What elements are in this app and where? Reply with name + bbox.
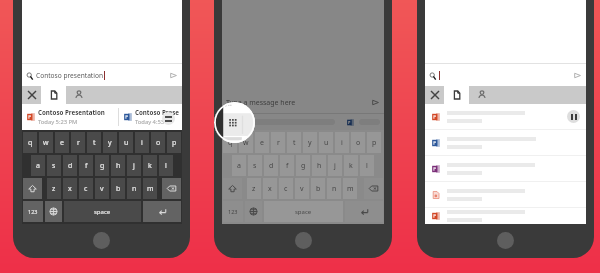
button[interactable]	[432, 182, 582, 207]
button[interactable]: z	[247, 178, 261, 199]
button[interactable]: q	[23, 132, 37, 153]
button[interactable]: s	[248, 155, 262, 176]
button[interactable]: l	[360, 155, 374, 176]
button[interactable]: y	[103, 132, 117, 153]
button[interactable]: Change language	[245, 201, 262, 222]
button[interactable]: i	[135, 132, 149, 153]
button[interactable]: People tab	[469, 86, 495, 104]
button[interactable]	[425, 64, 586, 86]
button[interactable]: u	[119, 132, 133, 153]
button[interactable]: m	[143, 178, 157, 199]
button[interactable]: w	[239, 132, 253, 153]
button[interactable]: Home	[93, 232, 110, 249]
button[interactable]: w	[39, 132, 53, 153]
button[interactable]: i	[335, 132, 349, 153]
button[interactable]: h	[312, 155, 326, 176]
staticText: 123	[28, 208, 38, 215]
staticText: Today 4:53	[135, 118, 165, 126]
staticText: v	[100, 184, 104, 194]
staticText: d	[68, 161, 73, 171]
button[interactable]: l	[159, 155, 173, 176]
button[interactable]: f	[280, 155, 294, 176]
button[interactable]	[432, 104, 582, 129]
button[interactable]: r	[271, 132, 285, 153]
button[interactable]: j	[127, 155, 141, 176]
button[interactable]: 123	[223, 201, 243, 222]
button[interactable]: space	[64, 201, 141, 222]
button[interactable]: n	[327, 178, 341, 199]
button[interactable]	[432, 130, 582, 155]
button[interactable]: c	[79, 178, 93, 199]
button[interactable]: 123	[23, 201, 43, 222]
button[interactable]: o	[151, 132, 165, 153]
button[interactable]: t	[287, 132, 301, 153]
staticText: j	[133, 161, 135, 171]
button[interactable]: m	[343, 178, 357, 199]
button[interactable]: Shift	[223, 178, 242, 199]
button[interactable]: f	[79, 155, 93, 176]
button[interactable]: c	[279, 178, 293, 199]
button[interactable]: e	[55, 132, 69, 153]
button[interactable]: Backspace	[364, 178, 383, 199]
staticText: z	[52, 184, 56, 194]
button[interactable]: Contoso Presentation	[27, 104, 116, 130]
button[interactable]: Home	[295, 232, 312, 249]
button[interactable]: Contoso Prese	[124, 104, 180, 130]
button[interactable]: o	[351, 132, 365, 153]
staticText: b	[116, 184, 121, 194]
button[interactable]: t	[87, 132, 101, 153]
button[interactable]: Enter	[345, 201, 383, 222]
button[interactable]: Close	[425, 86, 444, 104]
button[interactable]: Apps	[214, 102, 255, 143]
button[interactable]: v	[95, 178, 109, 199]
button[interactable]: h	[111, 155, 125, 176]
button[interactable]: More options	[162, 112, 175, 125]
button[interactable]: a	[232, 155, 246, 176]
button[interactable]: space	[264, 201, 343, 222]
button[interactable]: e	[255, 132, 269, 153]
button[interactable]	[432, 208, 582, 224]
button[interactable]: p	[167, 132, 181, 153]
button[interactable]: b	[311, 178, 325, 199]
button[interactable]: n	[127, 178, 141, 199]
button[interactable]: k	[344, 155, 358, 176]
button[interactable]: d	[264, 155, 278, 176]
button[interactable]	[432, 156, 582, 181]
button[interactable]: b	[111, 178, 125, 199]
button[interactable]: Pause	[567, 110, 580, 123]
button[interactable]: g	[95, 155, 109, 176]
button[interactable]: x	[63, 178, 77, 199]
button[interactable]: v	[295, 178, 309, 199]
staticText: x	[68, 184, 72, 194]
button[interactable]: Files tab	[41, 86, 66, 104]
button[interactable]: a	[31, 155, 45, 176]
button[interactable]: r	[71, 132, 85, 153]
button[interactable]: g	[296, 155, 310, 176]
button[interactable]: s	[47, 155, 61, 176]
button[interactable]: Enter	[143, 201, 181, 222]
staticText: q	[28, 138, 33, 148]
button[interactable]: Backspace	[162, 178, 181, 199]
button[interactable]: People tab	[66, 86, 92, 104]
button[interactable]: y	[303, 132, 317, 153]
button[interactable]: q	[223, 132, 237, 153]
button[interactable]: Change language	[45, 201, 62, 222]
button[interactable]: Home	[497, 232, 514, 249]
button[interactable]: d	[63, 155, 77, 176]
staticText: t	[293, 138, 296, 148]
staticText: n	[332, 184, 337, 194]
button[interactable]: p	[367, 132, 381, 153]
button[interactable]: z	[47, 178, 61, 199]
button[interactable]: k	[143, 155, 157, 176]
button[interactable]: Files tab	[444, 86, 469, 104]
button[interactable]: Shift	[23, 178, 42, 199]
button[interactable]: u	[319, 132, 333, 153]
staticText: space	[94, 208, 111, 216]
button[interactable]: Close	[22, 86, 41, 104]
button[interactable]: j	[328, 155, 342, 176]
staticText: h	[317, 161, 322, 171]
button[interactable]: Contoso presentation	[22, 64, 182, 86]
staticText: p	[172, 138, 177, 148]
button[interactable]: x	[263, 178, 277, 199]
staticText: g	[100, 161, 105, 171]
